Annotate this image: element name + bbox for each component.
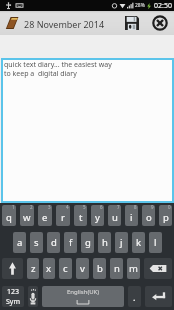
staticText: n: [114, 262, 120, 275]
staticText: i: [130, 211, 133, 224]
button[interactable]: j: [115, 232, 128, 253]
button[interactable]: b: [93, 258, 106, 279]
staticText: t: [79, 211, 83, 224]
button[interactable]: 7: [108, 205, 121, 226]
button[interactable]: 1: [2, 205, 16, 226]
button[interactable]: .: [128, 286, 141, 307]
button[interactable]: n: [110, 258, 123, 279]
staticText: 123: [7, 287, 20, 297]
staticText: 1: [12, 205, 15, 210]
button[interactable]: z: [27, 258, 39, 279]
staticText: h: [102, 236, 108, 249]
button[interactable]: 6: [91, 205, 104, 226]
button[interactable]: 5: [74, 205, 87, 226]
staticText: 5: [83, 205, 86, 210]
staticText: 9: [151, 205, 154, 210]
staticText: k: [136, 236, 142, 249]
button[interactable]: 123: [2, 286, 24, 307]
staticText: l: [154, 236, 157, 249]
staticText: u: [112, 211, 118, 224]
button[interactable]: a: [13, 232, 26, 253]
staticText: Sym: [6, 297, 20, 307]
staticText: quick text diary... the easiest way to k…: [4, 60, 112, 78]
button[interactable]: quick text diary... the easiest way to k…: [1, 58, 174, 203]
button[interactable]: 3: [38, 205, 52, 226]
staticText: 4: [66, 205, 69, 210]
staticText: .: [133, 291, 136, 303]
button[interactable]: g: [81, 232, 94, 253]
button[interactable]: k: [132, 232, 145, 253]
staticText: r: [61, 211, 65, 224]
button[interactable]: Enter: [145, 286, 172, 307]
button[interactable]: c: [59, 258, 72, 279]
button[interactable]: Save: [121, 11, 143, 35]
staticText: d: [51, 236, 57, 249]
button[interactable]: 8: [125, 205, 138, 226]
staticText: z: [31, 262, 36, 275]
button[interactable]: 0: [159, 205, 172, 226]
staticText: 8: [134, 205, 137, 210]
staticText: q: [6, 211, 12, 224]
staticText: p: [163, 211, 169, 224]
staticText: English(UK): [67, 288, 100, 296]
staticText: c: [63, 262, 68, 275]
button[interactable]: English(UK): [42, 286, 124, 307]
staticText: 28 November 2014: [24, 18, 105, 30]
button[interactable]: Cancel: [149, 11, 171, 35]
staticText: y: [95, 211, 100, 224]
button[interactable]: f: [64, 232, 77, 253]
staticText: w: [23, 211, 31, 224]
staticText: b: [97, 262, 103, 275]
staticText: x: [46, 262, 52, 275]
staticText: 2: [30, 205, 33, 210]
button[interactable]: Backspace: [144, 258, 172, 279]
staticText: j: [120, 236, 123, 249]
staticText: v: [80, 262, 85, 275]
staticText: o: [146, 211, 152, 224]
button[interactable]: h: [98, 232, 111, 253]
button[interactable]: d: [47, 232, 60, 253]
staticText: 6: [100, 205, 103, 210]
button[interactable]: 2: [20, 205, 34, 226]
button[interactable]: m: [127, 258, 140, 279]
staticText: s: [34, 236, 39, 249]
staticText: 28%: [135, 2, 145, 9]
button[interactable]: l: [149, 232, 162, 253]
staticText: 0: [168, 205, 171, 210]
staticText: g: [85, 236, 91, 249]
button[interactable]: Shift: [2, 258, 23, 279]
button[interactable]: Voice input: [28, 286, 38, 307]
staticText: e: [42, 211, 48, 224]
button[interactable]: s: [30, 232, 43, 253]
button[interactable]: v: [76, 258, 89, 279]
staticText: a: [17, 236, 23, 249]
staticText: m: [129, 262, 138, 275]
staticText: 7: [117, 205, 120, 210]
staticText: 02:50: [154, 1, 172, 11]
button[interactable]: 9: [142, 205, 155, 226]
staticText: 3: [48, 205, 51, 210]
button[interactable]: x: [43, 258, 55, 279]
staticText: f: [69, 236, 73, 249]
button[interactable]: 4: [56, 205, 70, 226]
